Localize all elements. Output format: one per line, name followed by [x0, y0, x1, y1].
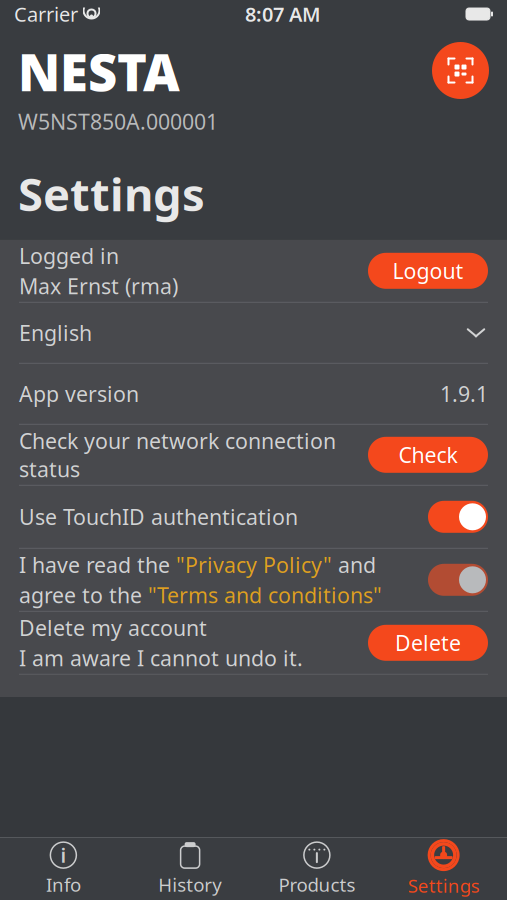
staticText: Check your network connection status — [19, 426, 336, 483]
staticText: Use TouchID authentication — [19, 503, 298, 531]
staticText: History — [158, 872, 222, 897]
button[interactable]: Products — [253, 838, 380, 900]
staticText: Check — [398, 441, 457, 469]
button[interactable]: i — [0, 838, 127, 900]
button[interactable]: Use TouchID authentication — [428, 501, 488, 533]
staticText: Products — [278, 872, 355, 897]
staticText: NESTA — [18, 38, 180, 105]
staticText: Carrier — [14, 1, 78, 27]
staticText: Logged in — [19, 241, 119, 270]
staticText: Settings — [408, 873, 480, 898]
staticText: "Terms and conditions" — [148, 581, 382, 609]
staticText: "Privacy Policy" — [176, 550, 332, 579]
staticText: Max Ernst (rma) — [19, 272, 178, 300]
staticText: Logout — [392, 257, 463, 285]
button[interactable]: Agree to Privacy Policy and Terms — [428, 564, 488, 596]
button[interactable]: Check — [368, 437, 488, 473]
staticText: agree to the — [19, 581, 148, 609]
staticText: Delete my account — [19, 613, 207, 642]
button[interactable]: History — [127, 838, 254, 900]
button[interactable]: Logout — [368, 253, 488, 289]
button[interactable]: Scan QR code — [432, 42, 489, 99]
staticText: I have read the — [19, 550, 176, 579]
button[interactable]: English — [0, 303, 507, 363]
staticText: App version — [19, 380, 139, 408]
staticText: 1.9.1 — [440, 380, 488, 408]
staticText: Settings — [18, 164, 205, 224]
staticText: Delete — [395, 629, 461, 657]
staticText: W5NST850A.000001 — [18, 107, 218, 136]
staticText: 8:07 AM — [245, 1, 321, 27]
staticText: and — [332, 550, 376, 579]
button[interactable]: Delete — [368, 625, 488, 661]
button[interactable]: "Terms and conditions" — [148, 581, 382, 609]
button[interactable]: Settings — [380, 838, 507, 900]
staticText: i — [60, 842, 66, 868]
staticText: I am aware I cannot undo it. — [19, 644, 303, 672]
button[interactable]: "Privacy Policy" — [176, 550, 332, 579]
staticText: English — [19, 319, 92, 347]
staticText: Info — [46, 872, 81, 897]
